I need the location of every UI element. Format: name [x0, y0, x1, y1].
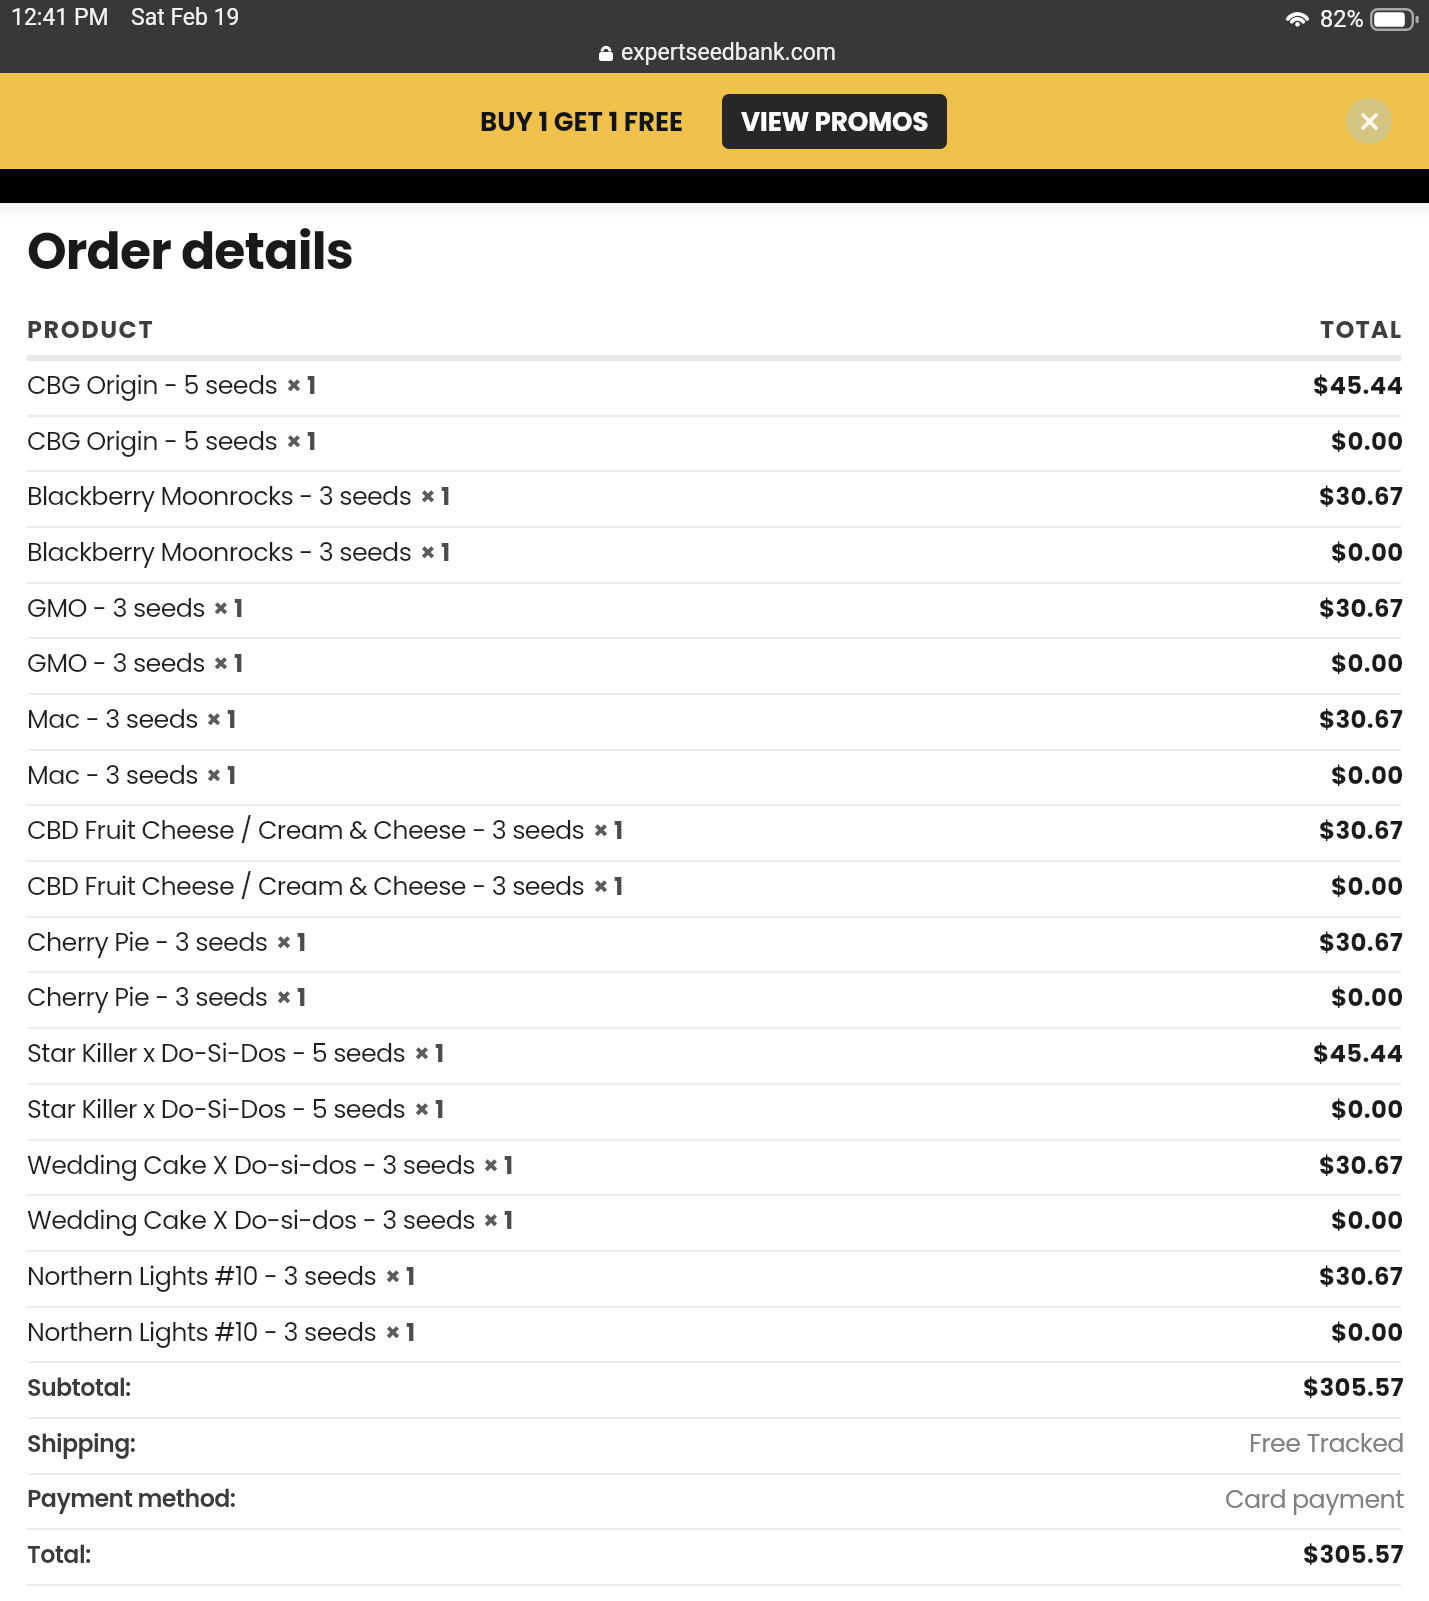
staticText: 1 — [234, 591, 244, 625]
staticText: Subtotal: — [27, 1371, 1303, 1404]
staticText: × — [483, 1148, 499, 1183]
staticText: 1 — [435, 1036, 445, 1070]
staticText: PRODUCT — [27, 313, 1320, 339]
staticText: Mac - 3 seeds — [27, 757, 198, 793]
staticText: × — [420, 479, 436, 514]
staticText: 1 — [406, 1259, 416, 1293]
staticText: 1 — [614, 869, 624, 903]
staticText: TOTAL — [1320, 313, 1403, 339]
staticText: Card payment — [1225, 1481, 1404, 1517]
staticText: Order details — [27, 216, 354, 287]
staticText: $30.67 — [1319, 925, 1404, 959]
staticText: 1 — [504, 1203, 514, 1237]
staticText: 12:41 PM — [11, 4, 109, 31]
staticText: 1 — [614, 813, 624, 847]
staticText: 1 — [297, 980, 307, 1014]
staticText: $45.44 — [1313, 1036, 1404, 1070]
staticText: × — [385, 1259, 401, 1294]
staticText: $0.00 — [1331, 869, 1404, 903]
staticText: × — [414, 1036, 430, 1071]
staticText: CBG Origin - 5 seeds — [27, 367, 278, 403]
staticText: expertseedbank.com — [621, 39, 837, 66]
staticText: Northern Lights #10 - 3 seeds — [27, 1258, 377, 1294]
staticText: 1 — [406, 1315, 416, 1349]
staticText: × — [385, 1315, 401, 1350]
staticText: × — [213, 591, 229, 626]
staticText: $30.67 — [1319, 813, 1404, 847]
staticText: $30.67 — [1319, 591, 1404, 625]
staticText: × — [276, 925, 292, 960]
staticText: × — [286, 424, 302, 459]
staticText: 1 — [234, 646, 244, 680]
staticText: Wedding Cake X Do-si-dos - 3 seeds — [27, 1202, 475, 1238]
staticText: × — [483, 1203, 499, 1238]
staticText: $0.00 — [1331, 1092, 1404, 1126]
staticText: 1 — [307, 368, 317, 402]
staticText: Star Killer x Do-Si-Dos - 5 seeds — [27, 1091, 406, 1127]
staticText: $0.00 — [1331, 646, 1404, 680]
staticText: VIEW PROMOS — [741, 104, 929, 140]
staticText: Cherry Pie - 3 seeds — [27, 924, 268, 960]
staticText: × — [414, 1092, 430, 1127]
staticText: Free Tracked — [1249, 1425, 1404, 1461]
staticText: × — [420, 535, 436, 570]
staticText: 1 — [441, 535, 451, 569]
staticText: Star Killer x Do-Si-Dos - 5 seeds — [27, 1035, 406, 1071]
staticText: × — [286, 368, 302, 403]
staticText: × — [206, 758, 222, 793]
staticText: Shipping: — [27, 1427, 1249, 1460]
staticText: $305.57 — [1303, 1370, 1404, 1404]
staticText: CBG Origin - 5 seeds — [27, 423, 278, 459]
staticText: Blackberry Moonrocks - 3 seeds — [27, 534, 412, 570]
staticText: Total: — [27, 1538, 1303, 1571]
staticText: 1 — [297, 925, 307, 959]
button[interactable]: VIEW PROMOS — [722, 94, 947, 149]
staticText: 1 — [227, 758, 237, 792]
staticText: 1 — [307, 424, 317, 458]
button[interactable]: Close promo banner — [1346, 98, 1392, 144]
staticText: 1 — [227, 702, 237, 736]
staticText: × — [213, 646, 229, 681]
staticText: Wedding Cake X Do-si-dos - 3 seeds — [27, 1147, 475, 1183]
staticText: $0.00 — [1331, 424, 1404, 458]
staticText: BUY 1 GET 1 FREE — [480, 104, 684, 140]
staticText: $0.00 — [1331, 535, 1404, 569]
staticText: Payment method: — [27, 1482, 1225, 1515]
staticText: GMO - 3 seeds — [27, 590, 205, 626]
staticText: $45.44 — [1313, 368, 1404, 402]
staticText: $30.67 — [1319, 702, 1404, 736]
staticText: × — [593, 869, 609, 904]
staticText: $30.67 — [1319, 1259, 1404, 1293]
staticText: $0.00 — [1331, 1315, 1404, 1349]
staticText: $30.67 — [1319, 1148, 1404, 1182]
staticText: $30.67 — [1319, 479, 1404, 513]
staticText: 1 — [504, 1148, 514, 1182]
staticText: Blackberry Moonrocks - 3 seeds — [27, 478, 412, 514]
staticText: Sat Feb 19 — [131, 4, 240, 31]
staticText: 1 — [435, 1092, 445, 1126]
staticText: Northern Lights #10 - 3 seeds — [27, 1314, 377, 1350]
staticText: 82% — [1320, 5, 1364, 33]
staticText: × — [276, 980, 292, 1015]
staticText: $0.00 — [1331, 980, 1404, 1014]
staticText: $305.57 — [1303, 1537, 1404, 1571]
staticText: CBD Fruit Cheese / Cream & Cheese - 3 se… — [27, 812, 585, 848]
staticText: Cherry Pie - 3 seeds — [27, 979, 268, 1015]
staticText: 1 — [441, 479, 451, 513]
staticText: × — [206, 702, 222, 737]
staticText: $0.00 — [1331, 1203, 1404, 1237]
staticText: Mac - 3 seeds — [27, 701, 198, 737]
button[interactable]: Address bar: expertseedbank.com — [599, 39, 837, 66]
staticText: × — [593, 813, 609, 848]
staticText: CBD Fruit Cheese / Cream & Cheese - 3 se… — [27, 868, 585, 904]
staticText: GMO - 3 seeds — [27, 645, 205, 681]
staticText: $0.00 — [1331, 758, 1404, 792]
